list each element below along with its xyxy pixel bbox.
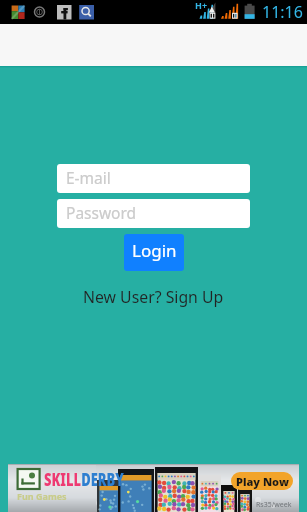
button[interactable]: E-mail xyxy=(57,164,250,193)
button[interactable]: Play Now xyxy=(231,472,293,490)
staticText: Fun Games xyxy=(17,490,67,502)
button[interactable]: Password xyxy=(57,199,250,228)
staticText: New User? Sign Up xyxy=(83,286,224,308)
staticText: SKILL xyxy=(44,468,81,491)
staticText: Password xyxy=(66,202,137,223)
staticText: H+ xyxy=(195,0,208,11)
staticText: E-mail xyxy=(66,167,111,188)
staticText: 11:16 xyxy=(262,1,303,23)
staticText: Play Now xyxy=(236,474,289,489)
button[interactable]: Login xyxy=(124,234,184,271)
staticText: Rs35/week xyxy=(256,500,292,510)
staticText: DERBY xyxy=(81,468,124,491)
button[interactable]: New User? Sign Up xyxy=(79,282,228,312)
button[interactable]: SKILL xyxy=(8,464,299,512)
staticText: Login xyxy=(132,239,177,262)
